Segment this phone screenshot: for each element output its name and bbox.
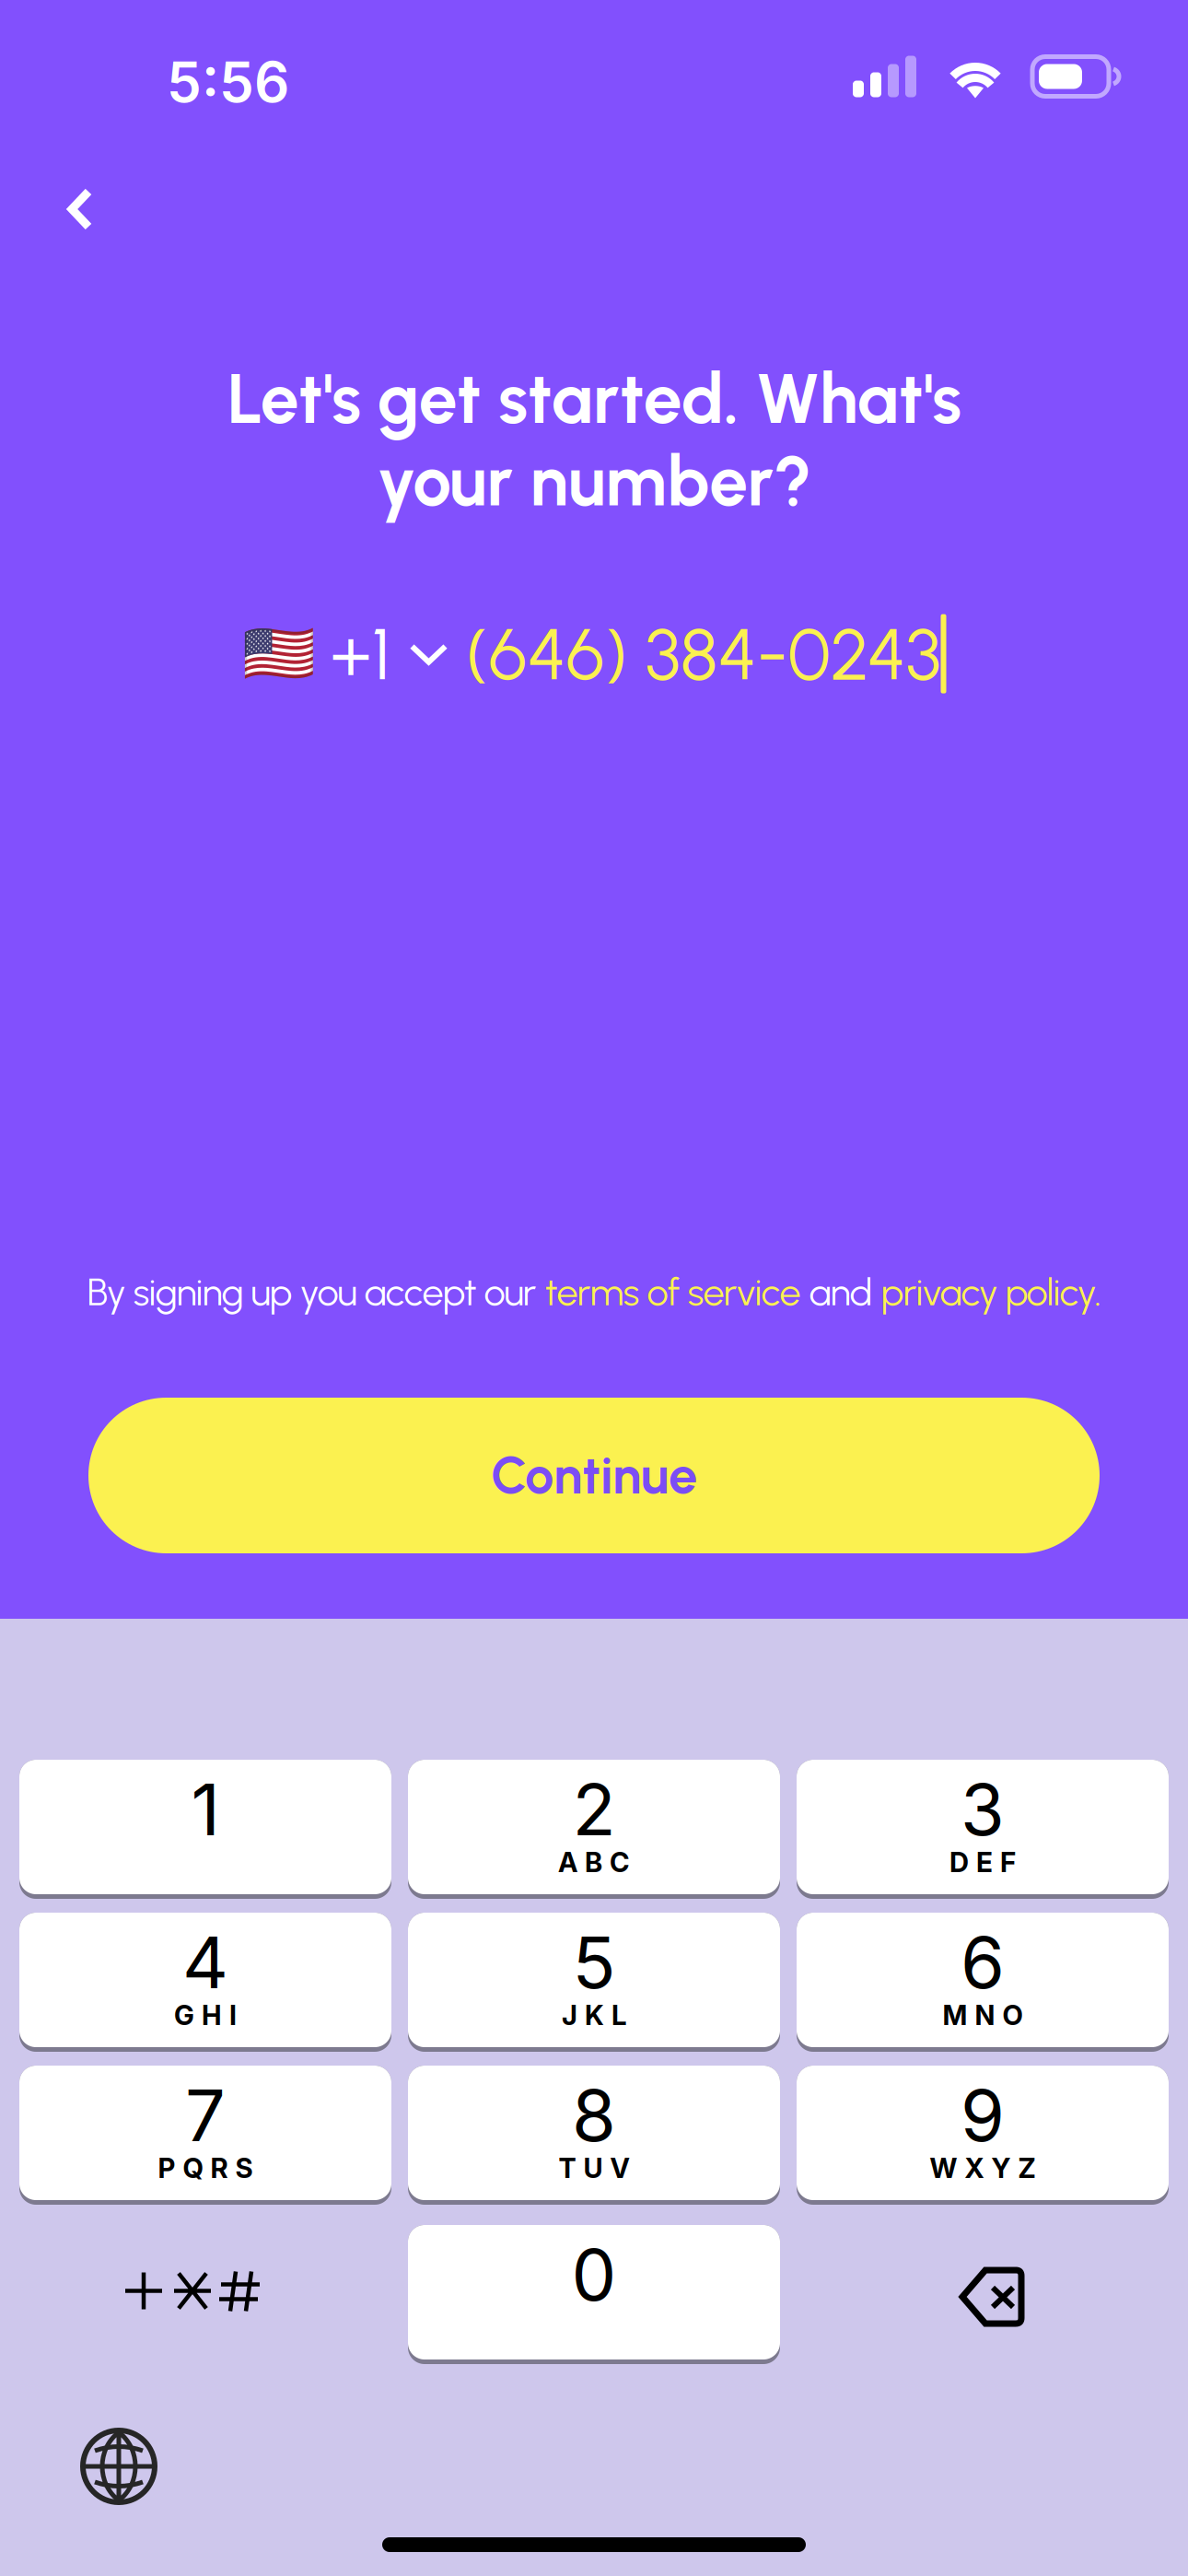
button[interactable]: 3	[797, 1760, 1169, 1894]
button[interactable]: Continue	[88, 1398, 1100, 1553]
button[interactable]: 9	[797, 2066, 1169, 2200]
button[interactable]: Delete	[797, 2225, 1169, 2359]
button[interactable]: 6	[797, 1913, 1169, 2047]
staticText: and	[801, 1269, 881, 1315]
staticText: +1	[330, 611, 390, 697]
button[interactable]: Back	[0, 153, 129, 254]
staticText: (646) 384-0243	[466, 611, 941, 697]
staticText: 5	[572, 1919, 616, 2005]
button[interactable]: privacy policy.	[881, 1269, 1101, 1315]
button[interactable]: terms of service	[545, 1269, 801, 1315]
button[interactable]: 2	[408, 1760, 780, 1894]
staticText: 8	[572, 2072, 616, 2158]
staticText: terms of service	[545, 1269, 801, 1315]
staticText: PQRS	[158, 2152, 253, 2185]
staticText: Let's get started. What's your number?	[227, 357, 961, 523]
staticText: ABC	[558, 1846, 630, 1879]
staticText: JKL	[562, 1999, 626, 2032]
staticText: MNO	[943, 1999, 1023, 2032]
staticText: 1	[191, 1766, 220, 1852]
button[interactable]: 1	[19, 1760, 391, 1894]
staticText: 9	[961, 2072, 1005, 2158]
staticText: 🇺🇸	[242, 619, 315, 688]
button[interactable]: Plus, star, pound	[19, 2225, 391, 2359]
button[interactable]: Next keyboard	[61, 2412, 177, 2521]
staticText: GHI	[174, 1999, 237, 2032]
staticText: 3	[961, 1766, 1005, 1852]
staticText: TUV	[559, 2152, 629, 2185]
staticText: 4	[182, 1919, 228, 2005]
button[interactable]: 0	[408, 2225, 780, 2359]
staticText: privacy policy.	[881, 1269, 1101, 1315]
button[interactable]: 7	[19, 2066, 391, 2200]
button[interactable]: 5	[408, 1913, 780, 2047]
staticText: 5:56	[167, 49, 289, 115]
button[interactable]: 4	[19, 1913, 391, 2047]
staticText: 7	[185, 2072, 226, 2158]
staticText: 0	[571, 2231, 617, 2318]
staticText: WXYZ	[930, 2152, 1036, 2185]
button[interactable]: 8	[408, 2066, 780, 2200]
staticText: Continue	[491, 1445, 697, 1506]
staticText: 6	[961, 1919, 1005, 2005]
staticText: 2	[572, 1766, 616, 1852]
staticText: DEF	[949, 1846, 1016, 1879]
staticText: By signing up you accept our	[87, 1269, 545, 1315]
